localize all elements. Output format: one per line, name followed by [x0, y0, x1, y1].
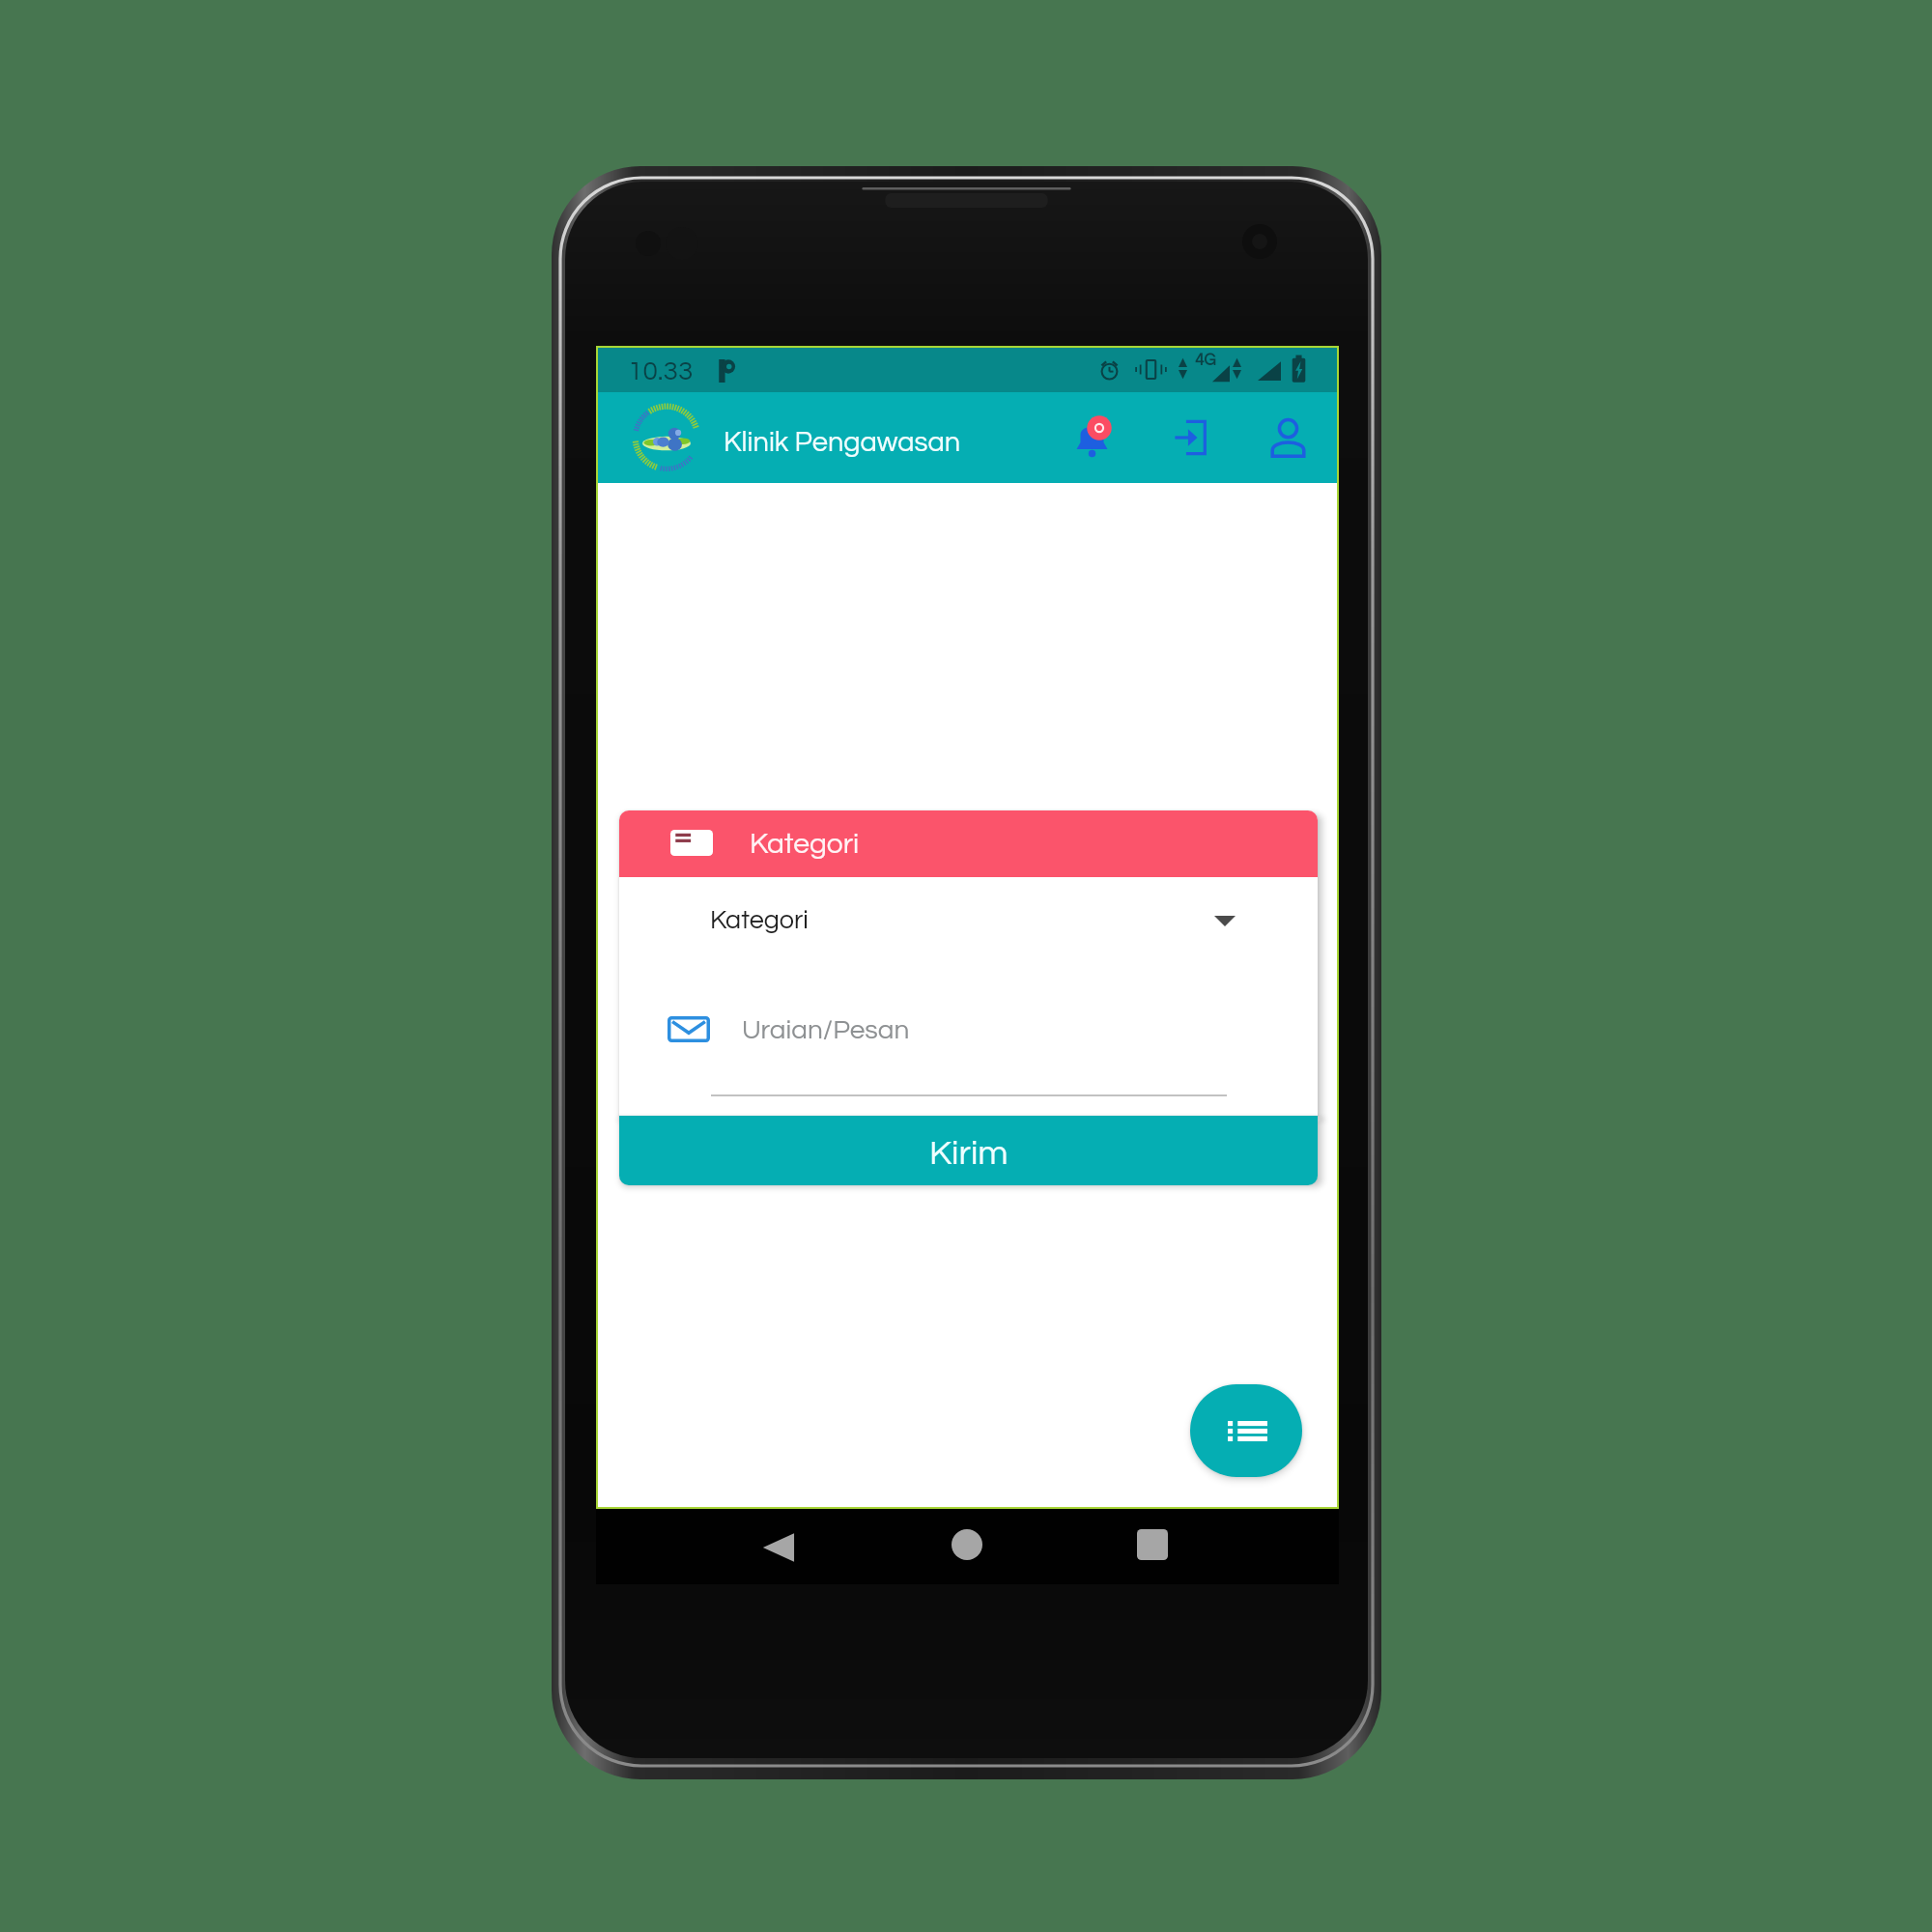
staticText: 4G	[1195, 352, 1216, 369]
staticText: Kategori	[710, 907, 809, 934]
button[interactable]: Recents	[1128, 1520, 1177, 1569]
staticText: 10.33	[628, 357, 694, 385]
staticText: Klinik Pengawasan	[724, 428, 961, 457]
staticText: Uraian/Pesan	[742, 1016, 910, 1044]
button[interactable]: Notifikasi	[1065, 409, 1123, 467]
button[interactable]: Pilih Kategori	[619, 877, 1318, 964]
button[interactable]: Daftar Pengaduan	[1190, 1384, 1302, 1477]
button[interactable]: Kirim	[619, 1116, 1318, 1185]
staticText: Kirim	[929, 1135, 1009, 1171]
button[interactable]: Akun	[1259, 408, 1317, 466]
button[interactable]: Back	[750, 1519, 808, 1577]
button[interactable]: Masuk	[1161, 409, 1219, 467]
button[interactable]: Home	[943, 1520, 991, 1569]
staticText: Kategori	[750, 829, 860, 859]
